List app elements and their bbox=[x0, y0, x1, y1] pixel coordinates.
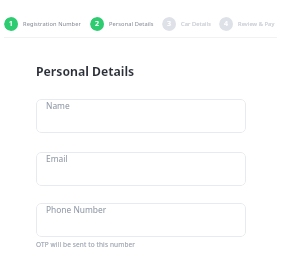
button[interactable]: Email bbox=[36, 152, 246, 186]
staticText: Review & Pay bbox=[238, 20, 275, 28]
staticText: 2 bbox=[95, 19, 100, 29]
button[interactable]: 1 bbox=[4, 17, 81, 31]
staticText: Phone Number bbox=[46, 204, 107, 215]
button[interactable]: 2 bbox=[90, 17, 154, 31]
staticText: Personal Details bbox=[109, 20, 154, 28]
staticText: OTP will be sent to this number bbox=[36, 240, 136, 249]
button[interactable]: 4 bbox=[219, 17, 275, 31]
staticText: Name bbox=[46, 100, 70, 111]
staticText: 3 bbox=[167, 19, 172, 29]
staticText: Car Details bbox=[181, 20, 211, 28]
staticText: Personal Details bbox=[36, 63, 135, 80]
staticText: Registration Number bbox=[23, 20, 81, 28]
button[interactable]: Phone Number bbox=[36, 203, 246, 237]
button[interactable]: 3 bbox=[162, 17, 211, 31]
button[interactable]: Name bbox=[36, 99, 246, 133]
staticText: 1 bbox=[9, 19, 14, 29]
staticText: Email bbox=[46, 153, 68, 164]
staticText: 4 bbox=[224, 19, 229, 29]
